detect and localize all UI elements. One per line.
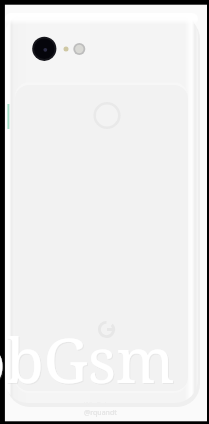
button[interactable]: Google Pixel 3 in white, rear view (0, 0, 209, 424)
staticText: @rquandt (84, 408, 117, 418)
staticText: WinFuture (84, 400, 119, 410)
staticText: obGsm (0, 317, 175, 401)
staticText: obGsm (0, 318, 176, 402)
